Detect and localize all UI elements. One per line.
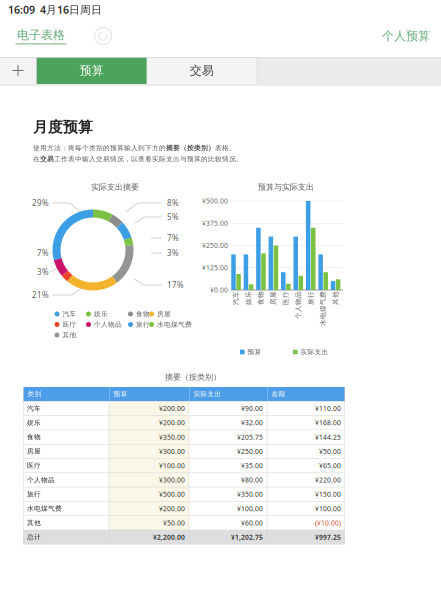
staticText: 水电煤气费 [157,320,192,329]
staticText: ¥125.00 [202,263,228,272]
staticText: 17% [167,280,184,290]
staticText: 医疗 [292,307,306,315]
staticText: 实际支出 [194,390,222,398]
staticText: 食物 [27,433,41,441]
staticText: 3% [37,267,49,277]
staticText: 8% [167,198,179,208]
staticText: ¥110.00 [315,404,341,413]
staticText: ¥65.00 [319,461,341,470]
button[interactable]: 电子表格 [11,26,71,46]
staticText: ¥250.00 [237,447,263,456]
staticText: 总计 [27,533,41,541]
staticText: ¥32.00 [241,418,263,427]
staticText: ¥350.00 [237,490,263,499]
staticText: 其他 [27,519,41,527]
button[interactable]: 预算 [37,57,147,84]
staticText: ¥300.00 [159,475,185,484]
button[interactable]: Undo [92,25,114,47]
staticText: 类别 [28,390,42,398]
staticText: 21% [32,290,49,300]
staticText: 房屋 [27,447,41,455]
staticText: ¥200.00 [159,504,185,513]
staticText: ¥60.00 [241,518,263,527]
staticText: 预算 [114,390,128,398]
staticText: ¥200.00 [159,404,185,413]
button[interactable]: Add sheet [0,57,36,84]
staticText: 在交易工作表中输入交易情况，以查看实际支出与预算的比较情况。 [33,155,243,163]
staticText: 5% [167,212,179,222]
staticText: 汽车 [27,404,41,413]
staticText: 食物 [136,310,150,318]
staticText: 预算 [80,63,104,78]
staticText: ¥250.00 [202,241,228,250]
staticText: 旅行 [317,307,331,315]
staticText: 交易 [190,63,214,78]
staticText: 个人物品 [290,307,318,315]
staticText: ¥300.00 [159,447,185,456]
staticText: 实际支出摘要 [91,182,139,192]
staticText: 7% [37,248,49,258]
staticText: 预算与实际支出 [258,182,314,192]
staticText: 水电煤气费 [308,307,343,315]
staticText: 旅行 [136,320,150,329]
staticText: ¥80.00 [241,475,263,484]
staticText: 7% [167,233,179,243]
staticText: 医疗 [62,320,76,329]
staticText: 16:09 [8,2,35,17]
staticText: 其他 [62,331,76,339]
staticText: ¥220.00 [315,475,341,484]
staticText: ¥0.00 [210,286,228,294]
staticText: ¥375.00 [202,219,228,228]
button[interactable]: 个人预算 [378,27,434,45]
staticText: ¥50.00 [319,447,341,456]
staticText: 4月16日周日 [40,2,102,17]
staticText: 水电煤气费 [27,504,62,513]
staticText: ¥500.00 [202,197,228,205]
staticText: 29% [32,198,49,208]
staticText: (¥10.00) [315,518,341,527]
staticText: ¥90.00 [241,404,263,413]
staticText: ¥205.75 [237,433,263,441]
staticText: ¥168.00 [315,418,341,427]
staticText: ¥50.00 [163,518,185,527]
staticText: 实际支出 [301,348,329,356]
staticText: ¥100.00 [315,504,341,513]
staticText: 医疗 [27,462,41,470]
staticText: ¥144.25 [315,433,341,441]
staticText: 个人物品 [27,476,55,484]
staticText: ¥150.00 [315,490,341,499]
staticText: 3% [167,248,179,258]
staticText: 差额 [272,390,286,398]
staticText: 个人预算 [382,29,430,43]
staticText: 旅行 [27,490,41,498]
button[interactable]: 交易 [147,57,257,84]
staticText: ¥1,202.75 [231,533,263,542]
staticText: 娱乐 [27,419,41,427]
staticText: ¥350.00 [159,433,185,441]
staticText: 预算 [248,348,262,356]
staticText: ¥35.00 [241,461,263,470]
staticText: ¥500.00 [159,490,185,499]
staticText: ¥997.25 [315,533,341,542]
staticText: 个人物品 [94,320,122,329]
staticText: ¥200.00 [159,418,185,427]
staticText: 电子表格 [17,28,65,42]
staticText: 月度预算 [33,118,93,136]
staticText: ¥2,200.00 [153,533,185,542]
staticText: 娱乐 [94,310,108,318]
staticText: 摘要（按类别） [165,372,221,382]
staticText: 房屋 [157,310,171,318]
staticText: 使用方法：将每个类别的预算输入到下方的摘要（按类别）表格。 [33,144,236,152]
staticText: ¥100.00 [159,461,185,470]
staticText: ¥100.00 [237,504,263,513]
staticText: 汽车 [62,310,76,318]
